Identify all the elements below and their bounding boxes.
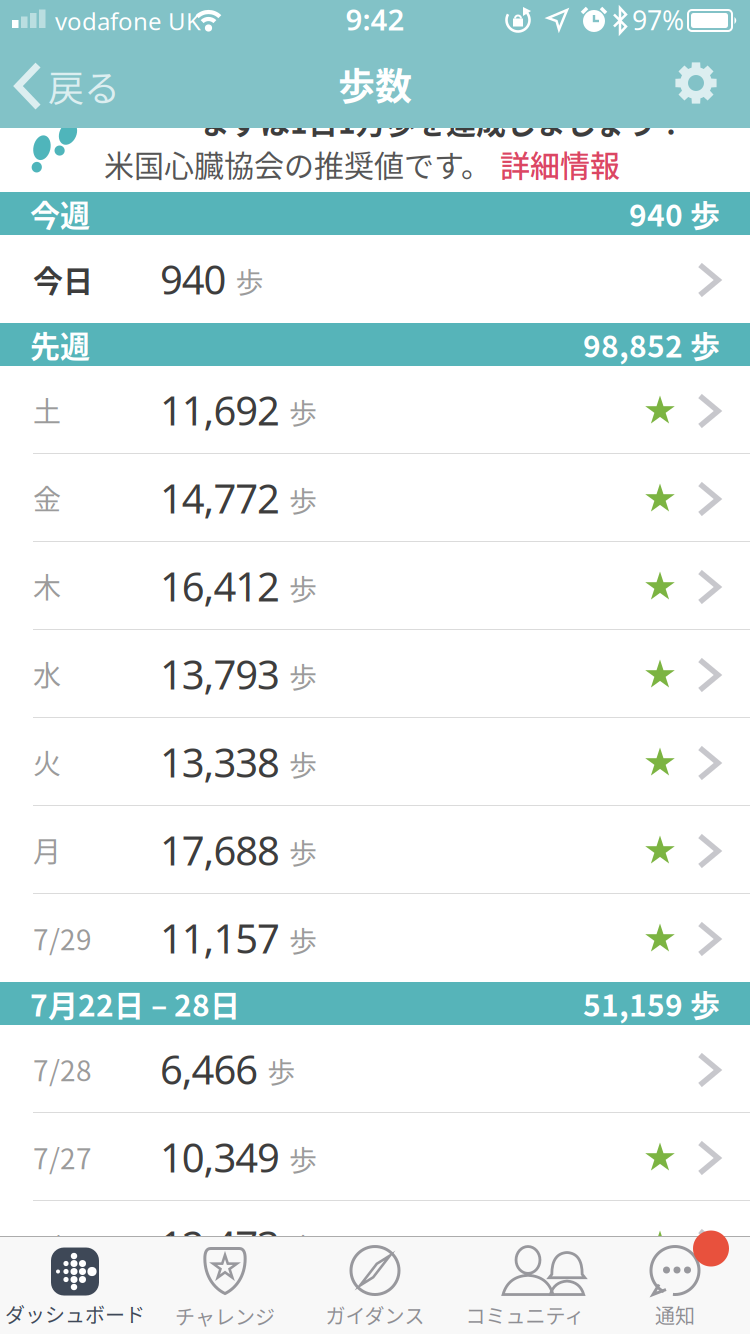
button[interactable]: 詳細情報 <box>500 142 620 185</box>
staticText: 火 <box>33 742 61 782</box>
staticText: 月 <box>33 830 61 870</box>
staticText: コミュニティ <box>465 1300 584 1329</box>
staticText: 6,466 <box>160 1042 258 1095</box>
staticText: 14,772 <box>160 471 280 524</box>
button[interactable]: 7/26 <box>0 1201 750 1289</box>
staticText: 13,793 <box>160 647 280 700</box>
staticText: 歩 <box>289 1139 317 1179</box>
staticText: 7/29 <box>33 918 92 958</box>
staticText: 今日 <box>33 257 93 301</box>
button[interactable]: 7/27 <box>0 1113 750 1201</box>
staticText: チャレンジ <box>175 1301 275 1330</box>
staticText: 今週 <box>30 192 90 235</box>
staticText: vodafone UK <box>55 5 201 37</box>
staticText: 51,159 歩 <box>583 982 720 1025</box>
button[interactable]: 木 <box>0 542 750 630</box>
button[interactable]: ガイダンス <box>300 1240 450 1334</box>
button[interactable]: 設定 <box>675 62 717 104</box>
staticText: 歩 <box>289 744 317 784</box>
staticText: まずは1日1万歩を達成しましょう！ <box>200 99 686 142</box>
staticText: 歩 <box>289 392 317 432</box>
staticText: 940 歩 <box>629 192 720 235</box>
staticText: 歩 <box>289 1227 317 1267</box>
button[interactable]: 今日 <box>0 235 750 323</box>
button[interactable]: チャレンジ <box>150 1240 300 1334</box>
button[interactable]: ダッシュボード <box>0 1240 150 1334</box>
staticText: 米国心臓協会の推奨値です。 <box>104 142 491 185</box>
button[interactable]: 土 <box>0 366 750 454</box>
staticText: 戻る <box>48 60 120 112</box>
staticText: 歩 <box>289 656 317 696</box>
staticText: 歩 <box>289 568 317 608</box>
button[interactable]: 7/29 <box>0 894 750 982</box>
button[interactable]: 金 <box>0 454 750 542</box>
staticText: 歩数 <box>338 57 412 111</box>
staticText: 歩 <box>267 1051 295 1091</box>
button[interactable]: 7/28 <box>0 1025 750 1113</box>
staticText: 詳細情報 <box>500 142 620 185</box>
button[interactable]: 月 <box>0 806 750 894</box>
staticText: 940 <box>160 252 227 305</box>
staticText: 97% <box>632 2 684 38</box>
staticText: 11,157 <box>160 911 280 964</box>
button[interactable]: 水 <box>0 630 750 718</box>
button[interactable]: コミュニティ <box>450 1240 600 1334</box>
staticText: 7/26 <box>33 1225 92 1265</box>
staticText: 歩 <box>289 920 317 960</box>
button[interactable]: 通知 <box>600 1240 750 1334</box>
staticText: 98,852 歩 <box>583 323 720 366</box>
staticText: ガイダンス <box>325 1300 424 1329</box>
staticText: 7/28 <box>33 1049 92 1089</box>
staticText: 7/27 <box>33 1137 92 1177</box>
staticText: 10,349 <box>160 1130 280 1183</box>
staticText: 歩 <box>289 832 317 872</box>
staticText: 通知 <box>655 1300 695 1329</box>
staticText: 木 <box>33 566 61 606</box>
staticText: 16,412 <box>160 559 280 612</box>
staticText: 金 <box>33 478 61 518</box>
staticText: 17,688 <box>160 823 280 876</box>
button[interactable]: 戻る <box>18 60 120 112</box>
staticText: 7月22日 – 28日 <box>30 982 240 1025</box>
staticText: 歩 <box>289 480 317 520</box>
staticText: 13,338 <box>160 735 280 788</box>
staticText: 9:42 <box>345 0 404 38</box>
staticText: 水 <box>33 654 61 694</box>
staticText: 土 <box>33 390 61 430</box>
staticText: 先週 <box>30 323 90 366</box>
staticText: ダッシュボード <box>5 1299 145 1328</box>
staticText: 11,692 <box>160 383 280 436</box>
staticText: 歩 <box>236 261 264 301</box>
button[interactable]: 火 <box>0 718 750 806</box>
staticText: 12,473 <box>160 1218 280 1271</box>
